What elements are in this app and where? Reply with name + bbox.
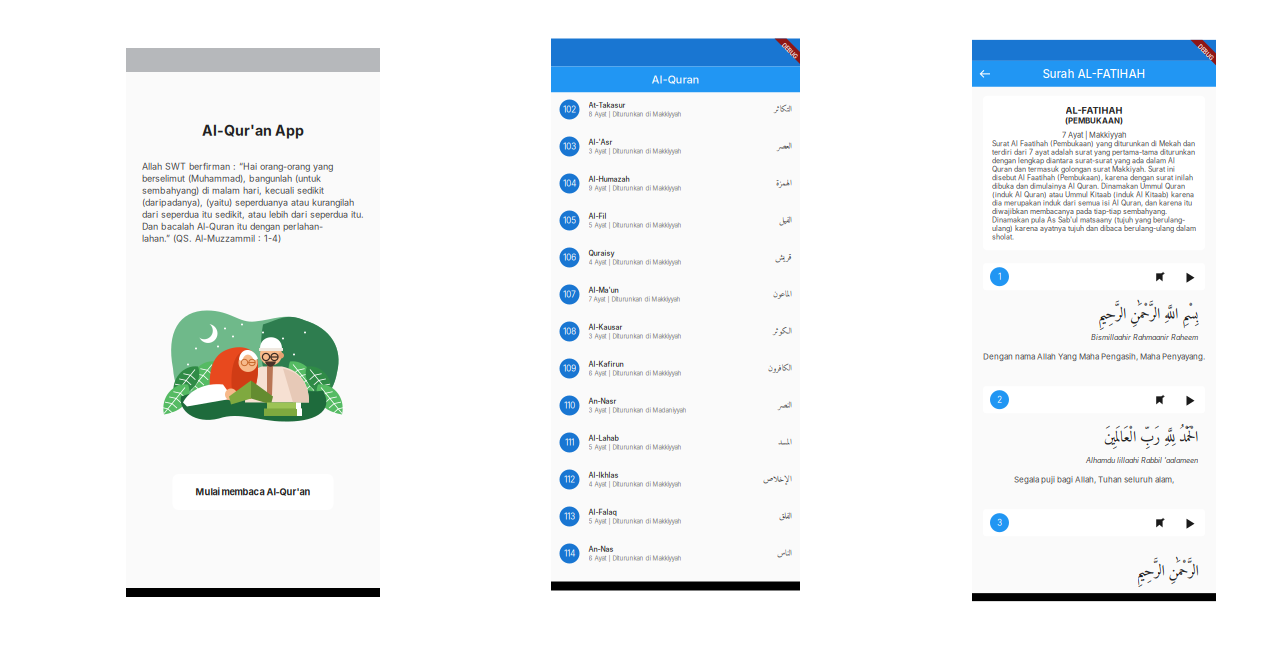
staticText: An-Nas — [588, 545, 613, 553]
button[interactable]: 105 — [551, 202, 800, 239]
staticText: 3 Ayat | Diturunkan di Madaniyyah — [588, 407, 686, 414]
staticText: 1 — [998, 272, 1001, 282]
button[interactable]: Play — [1181, 391, 1198, 409]
button[interactable]: Back — [972, 62, 997, 86]
staticText: الفيل — [778, 213, 791, 228]
button[interactable]: 112 — [551, 461, 800, 498]
staticText: Bismillaahir Rahmaanir Raheem — [1091, 333, 1198, 342]
staticText: Mulai membaca Al-Qur'an — [195, 486, 310, 497]
staticText: 113 — [564, 511, 575, 522]
staticText: Al-'Asr — [588, 138, 612, 146]
staticText: (PEMBUKAAN) — [1065, 116, 1123, 125]
staticText: 102 — [563, 104, 576, 115]
staticText: 8 Ayat | Diturunkan di Makkiyyah — [588, 111, 681, 118]
button[interactable]: Play — [1181, 514, 1198, 532]
staticText: Al-Kausar — [588, 323, 622, 331]
staticText: Segala puji bagi Allah, Tuhan seluruh al… — [1014, 475, 1174, 484]
staticText: الكوثر — [772, 324, 791, 339]
staticText: Al-Quran — [651, 73, 699, 86]
button[interactable]: 114 — [551, 535, 800, 572]
staticText: الإخلاص — [762, 472, 791, 487]
staticText: Al-Falaq — [588, 508, 616, 516]
staticText: 4 Ayat | Diturunkan di Makkiyyah — [588, 481, 681, 488]
staticText: 110 — [564, 400, 575, 411]
staticText: Al-Lahab — [588, 434, 618, 442]
button[interactable]: Mulai membaca Al-Qur'an — [172, 474, 333, 510]
staticText: Alhamdu lillaahi Rabbil 'aalameen — [1086, 456, 1198, 465]
staticText: الهمزة — [775, 176, 791, 191]
staticText: 109 — [563, 363, 576, 374]
staticText: Allah SWT berfirman : “Hai orang-orang y… — [142, 161, 364, 244]
staticText: 107 — [563, 289, 576, 300]
staticText: Al-Qur'an App — [202, 122, 304, 139]
staticText: Al-Fil — [588, 212, 606, 220]
staticText: 7 Ayat | Makkiyyah — [1062, 130, 1126, 139]
staticText: العصر — [776, 139, 791, 154]
staticText: At-Takasur — [588, 101, 625, 109]
staticText: 111 — [565, 437, 574, 448]
button[interactable]: Play — [1181, 268, 1198, 286]
staticText: 112 — [564, 474, 575, 485]
button[interactable]: 102 — [551, 91, 800, 128]
staticText: 114 — [564, 548, 575, 559]
staticText: 6 Ayat | Diturunkan di Makkiyyah — [588, 555, 681, 562]
staticText: DEBUG — [780, 47, 799, 54]
staticText: 106 — [563, 252, 576, 263]
staticText: 5 Ayat | Diturunkan di Makkiyyah — [588, 518, 681, 525]
button[interactable]: 107 — [551, 276, 800, 313]
staticText: 103 — [563, 141, 576, 152]
staticText: Surat Al Faatihah (Pembukaan) yang ditur… — [992, 139, 1196, 241]
staticText: Quraisy — [588, 249, 614, 257]
staticText: Al-Ma'un — [588, 286, 618, 294]
button[interactable]: 106 — [551, 239, 800, 276]
staticText: 4 Ayat | Diturunkan di Makkiyyah — [588, 259, 681, 266]
staticText: Surah AL-FATIHAH — [1042, 67, 1145, 81]
staticText: Al-Kafirun — [588, 360, 623, 368]
staticText: 105 — [563, 215, 576, 226]
staticText: 6 Ayat | Diturunkan di Makkiyyah — [588, 370, 681, 377]
staticText: الناس — [776, 546, 791, 561]
staticText: 5 Ayat | Diturunkan di Makkiyyah — [588, 222, 681, 229]
button[interactable]: 104 — [551, 165, 800, 202]
button[interactable]: Bookmark — [1151, 390, 1169, 409]
staticText: الماعون — [772, 287, 791, 302]
staticText: An-Nasr — [588, 397, 616, 405]
button[interactable]: 109 — [551, 350, 800, 387]
button[interactable]: 110 — [551, 387, 800, 424]
staticText: 7 Ayat | Diturunkan di Makkiyyah — [588, 296, 680, 303]
button[interactable]: 111 — [551, 424, 800, 461]
staticText: الفلق — [778, 509, 791, 524]
staticText: 2 — [997, 395, 1002, 405]
staticText: DEBUG — [1196, 49, 1215, 56]
staticText: 3 Ayat | Diturunkan di Makkiyyah — [588, 148, 681, 155]
staticText: 9 Ayat | Diturunkan di Makkiyyah — [588, 185, 681, 192]
staticText: قريش — [774, 250, 791, 265]
button[interactable]: Bookmark — [1151, 513, 1169, 532]
staticText: النصر — [777, 398, 791, 413]
staticText: 108 — [563, 326, 576, 337]
staticText: المسد — [777, 435, 791, 450]
staticText: الكافرون — [767, 361, 791, 376]
button[interactable]: Bookmark — [1151, 267, 1169, 286]
button[interactable]: 103 — [551, 128, 800, 165]
staticText: بِسْمِ اللَّهِ الرَّحْمَٰنِ الرَّحِيمِ — [1098, 301, 1198, 328]
staticText: 104 — [563, 178, 576, 189]
staticText: 5 Ayat | Diturunkan di Makkiyyah — [588, 444, 681, 451]
staticText: الْحَمْدُ لِلَّهِ رَبِّ الْعَالَمِينَ — [1104, 424, 1198, 451]
staticText: Al-Ikhlas — [588, 471, 618, 479]
staticText: Dengan nama Allah Yang Maha Pengasih, Ma… — [983, 352, 1205, 361]
staticText: الرَّحْمَٰنِ الرَّحِيمِ — [1136, 558, 1198, 585]
button[interactable]: 108 — [551, 313, 800, 350]
staticText: 3 — [997, 518, 1002, 528]
staticText: 3 Ayat | Diturunkan di Makkiyyah — [588, 333, 681, 340]
staticText: التكاثر — [773, 102, 791, 117]
staticText: AL-FATIHAH — [1065, 105, 1122, 116]
button[interactable]: 113 — [551, 498, 800, 535]
staticText: Al-Humazah — [588, 175, 629, 183]
